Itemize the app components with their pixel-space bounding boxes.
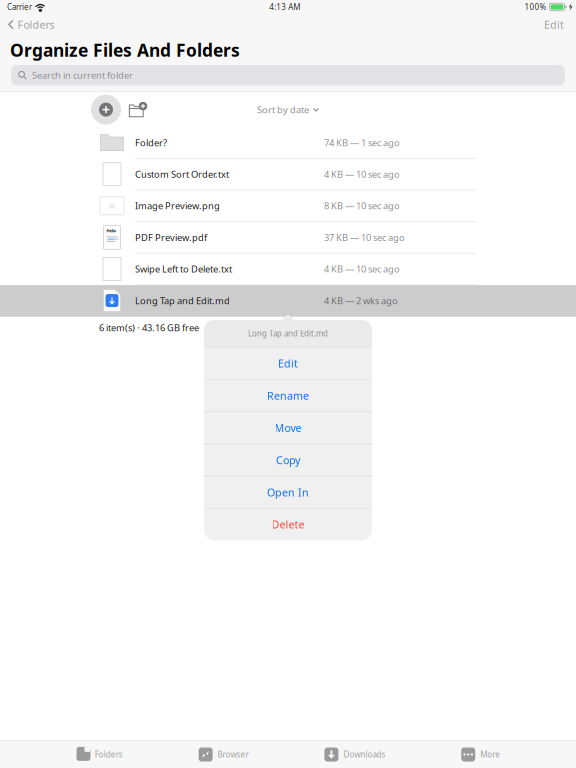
button[interactable]: Long Tap and Edit.md — [0, 285, 576, 317]
staticText: Folder? — [135, 136, 167, 149]
button[interactable]: Hello — [0, 222, 576, 253]
staticText: Folders — [95, 749, 123, 760]
button[interactable]: New Folder — [126, 99, 150, 121]
staticText: 74 KB — 1 sec ago — [324, 136, 400, 149]
staticText: Copy — [276, 453, 300, 467]
button[interactable]: Sort by date — [257, 98, 319, 122]
button[interactable]: Browser — [199, 741, 249, 767]
staticText: Rename — [267, 389, 309, 403]
staticText: Custom Sort Order.txt — [135, 168, 229, 180]
staticText: Browser — [218, 749, 249, 760]
staticText: Organize Files And Folders — [10, 38, 240, 61]
button[interactable]: More — [461, 741, 500, 767]
button[interactable]: Folders — [76, 741, 123, 767]
staticText: Delete — [271, 517, 304, 532]
staticText: More — [480, 749, 500, 760]
button[interactable]: Edit — [204, 348, 372, 379]
staticText: Move — [274, 421, 301, 435]
staticText: 8 KB — 10 sec ago — [324, 200, 400, 212]
staticText: Hello — [106, 228, 116, 233]
button[interactable]: Custom Sort Order.txt — [0, 159, 576, 190]
button[interactable]: Open In — [204, 476, 372, 508]
staticText: Sort by date — [257, 103, 309, 116]
staticText: Search in current folder — [32, 69, 133, 81]
staticText: 37 KB — 10 sec ago — [324, 231, 405, 244]
button[interactable]: Add — [91, 95, 121, 125]
button[interactable]: Folder? — [0, 127, 576, 159]
button[interactable]: Copy — [204, 444, 372, 476]
staticText: Carrier — [7, 2, 32, 12]
staticText: Image Preview.png — [135, 200, 220, 212]
button[interactable]: Move — [204, 412, 372, 444]
button[interactable]: Swipe Left to Delete.txt — [0, 253, 576, 285]
staticText: Edit — [278, 356, 298, 371]
staticText: Folders — [17, 17, 54, 32]
staticText: 4 KB — 10 sec ago — [324, 263, 400, 275]
staticText: Open In — [267, 485, 309, 499]
button[interactable]: Image Preview.png — [0, 190, 576, 222]
staticText: Swipe Left to Delete.txt — [135, 263, 232, 275]
staticText: 4 KB — 2 wks ago — [324, 294, 398, 307]
staticText: 100% — [524, 2, 546, 12]
button[interactable]: Folders — [0, 14, 62, 35]
staticText: Edit — [544, 17, 564, 32]
staticText: 6 item(s) · 43.16 GB free — [99, 321, 199, 334]
staticText: 4:13 AM — [269, 2, 300, 12]
staticText: 4 KB — 10 sec ago — [324, 168, 400, 180]
button[interactable]: Downloads — [324, 741, 385, 767]
button[interactable]: Edit — [532, 14, 576, 35]
staticText: Downloads — [343, 749, 385, 760]
button[interactable]: Rename — [204, 380, 372, 411]
staticText: Long Tap and Edit.md — [135, 294, 230, 307]
staticText: Long Tap and Edit.md — [248, 328, 328, 339]
staticText: PDF Preview.pdf — [135, 231, 207, 244]
button[interactable]: Delete — [204, 509, 372, 540]
